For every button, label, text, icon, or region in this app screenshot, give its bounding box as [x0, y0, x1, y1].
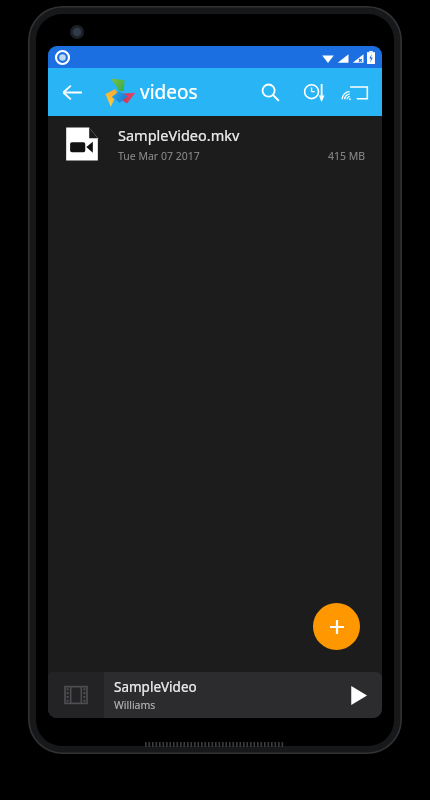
button[interactable]: SampleVideo	[48, 672, 382, 718]
button[interactable]: Search	[248, 70, 292, 114]
staticText: videos	[140, 79, 198, 105]
button[interactable]: Play	[336, 673, 380, 717]
staticText: SampleVideo.mkv	[118, 125, 240, 145]
staticText: 415 MB	[328, 149, 366, 163]
button[interactable]: Cast	[336, 70, 380, 114]
staticText: Tue Mar 07 2017	[118, 149, 200, 163]
button[interactable]: Sort	[292, 70, 336, 114]
button[interactable]: Add	[313, 603, 360, 650]
staticText: SampleVideo	[114, 678, 197, 696]
button[interactable]: Back	[48, 68, 96, 116]
staticText: Williams	[114, 698, 156, 712]
button[interactable]: SampleVideo.mkv	[48, 116, 382, 172]
